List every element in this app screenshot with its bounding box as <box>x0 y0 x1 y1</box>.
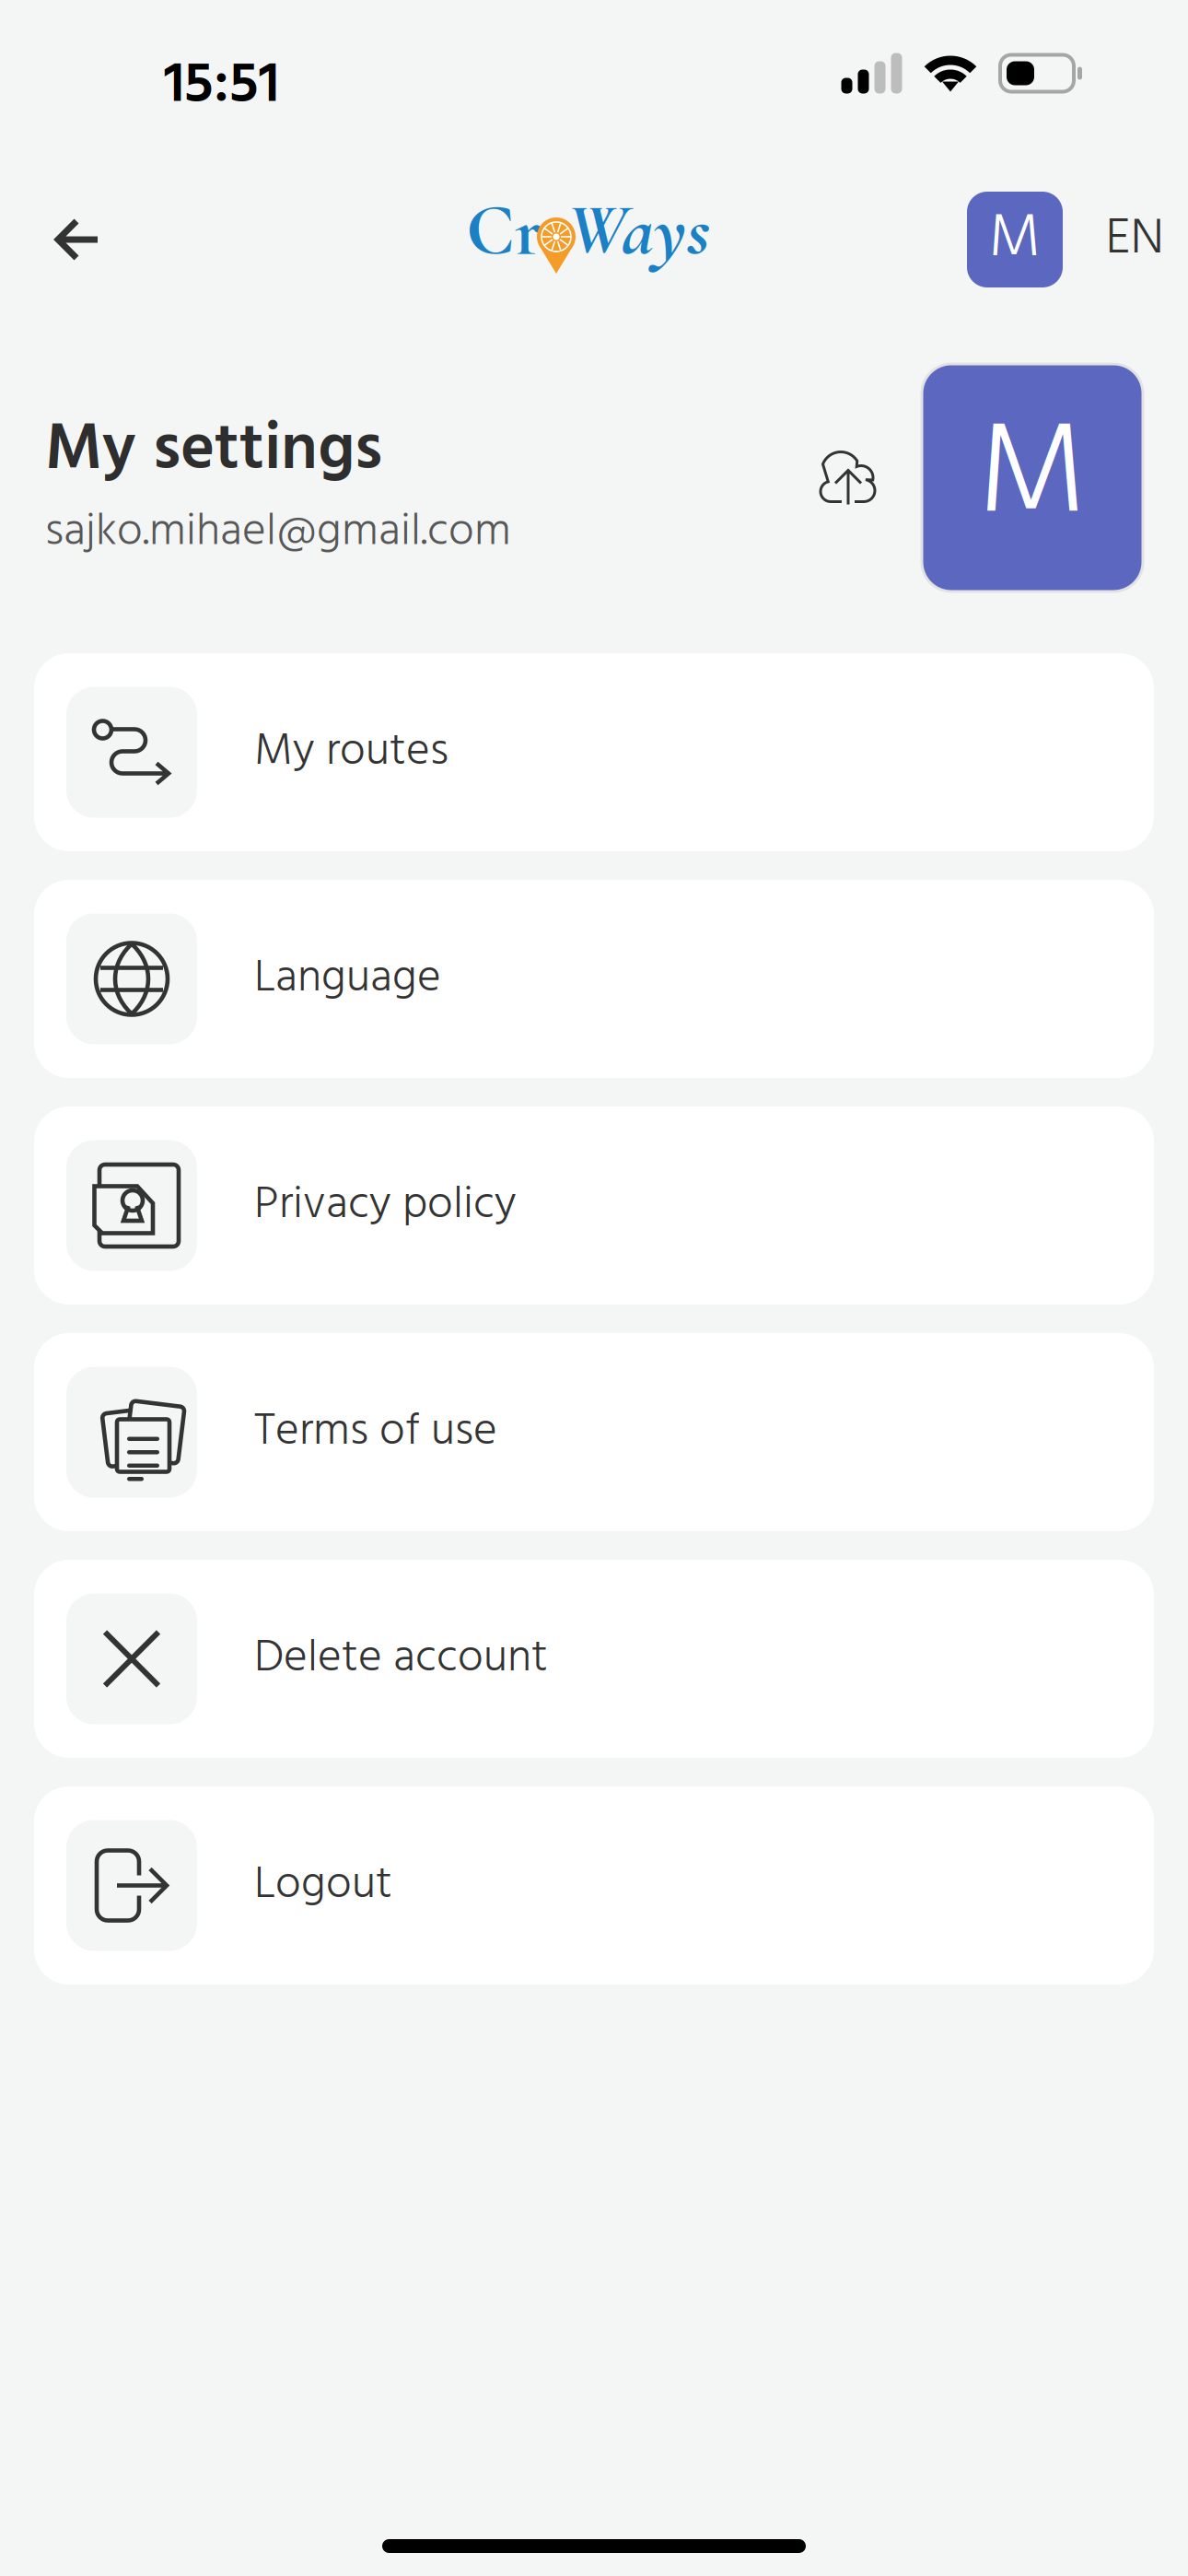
staticText: Logout <box>254 1849 392 1922</box>
staticText: My routes <box>254 716 448 789</box>
button[interactable]: Logout <box>34 1786 1154 1985</box>
button[interactable]: Account <box>967 192 1063 287</box>
button[interactable]: Language <box>34 880 1154 1078</box>
button[interactable]: Language EN <box>1102 207 1167 272</box>
staticText: Privacy policy <box>254 1169 517 1242</box>
button[interactable]: Terms of use <box>34 1333 1154 1531</box>
staticText: 15:51 <box>164 40 279 132</box>
button[interactable]: Back <box>35 193 120 286</box>
staticText: Terms of use <box>254 1396 497 1469</box>
staticText: Delete account <box>254 1622 548 1695</box>
staticText: Ways <box>567 186 710 274</box>
staticText: M <box>978 374 1087 581</box>
staticText: Cr <box>466 186 542 274</box>
staticText: EN <box>1106 199 1164 280</box>
staticText: Language <box>254 943 441 1015</box>
button[interactable]: Upload profile photo <box>800 430 896 526</box>
button[interactable]: Privacy policy <box>34 1107 1154 1305</box>
staticText: My settings <box>45 399 382 503</box>
button[interactable]: Delete account <box>34 1560 1154 1758</box>
staticText: sajko.mihael@gmail.com <box>45 496 511 569</box>
button[interactable]: My routes <box>34 653 1154 851</box>
staticText: M <box>989 190 1041 289</box>
button[interactable]: Profile picture <box>922 364 1143 591</box>
